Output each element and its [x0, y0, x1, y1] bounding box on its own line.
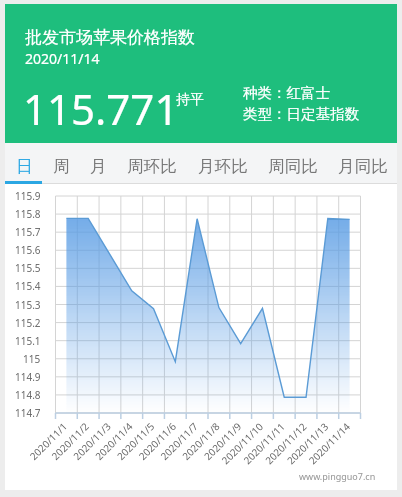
staticText: 类型：日定基指数	[243, 105, 359, 123]
staticText: www.pingguo7.cn	[299, 470, 376, 482]
staticText: 115.771	[23, 80, 179, 137]
button[interactable]: 月	[90, 148, 107, 184]
button[interactable]: 周	[53, 148, 70, 184]
button[interactable]: 月环比	[198, 148, 248, 184]
staticText: 周环比	[127, 156, 177, 177]
button[interactable]: 月同比	[338, 148, 388, 184]
button[interactable]: 周环比	[127, 148, 177, 184]
staticText: 月	[90, 156, 107, 177]
staticText: 日	[16, 156, 33, 177]
staticText: 周同比	[268, 156, 318, 177]
staticText: 种类：红富士	[243, 84, 330, 102]
staticText: 月同比	[338, 156, 388, 177]
staticText: 2020/11/14	[25, 49, 100, 68]
staticText: 周	[53, 156, 70, 177]
staticText: 持平	[176, 91, 204, 109]
button[interactable]: 周同比	[268, 148, 318, 184]
staticText: 月环比	[198, 156, 248, 177]
button[interactable]: 日	[16, 148, 33, 184]
staticText: 批发市场苹果价格指数	[25, 27, 195, 48]
